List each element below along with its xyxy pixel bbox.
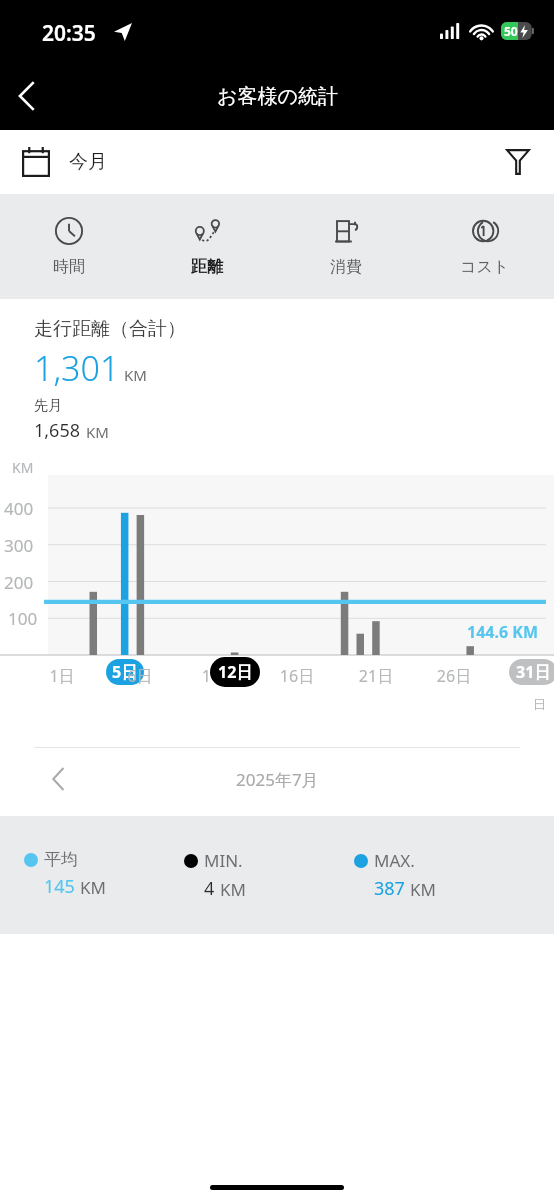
staticText: 31日 [516, 661, 551, 683]
staticText: 12日 [218, 661, 253, 683]
staticText: KM [410, 878, 436, 901]
staticText: 2025年7月 [236, 768, 319, 791]
staticText: 400 [4, 497, 34, 520]
staticText: 時間 [53, 257, 85, 277]
button[interactable]: 距離 [138, 194, 276, 299]
staticText: 消費 [330, 257, 362, 277]
button[interactable]: 5日 [106, 659, 144, 685]
button[interactable]: コスト [415, 194, 554, 299]
staticText: KM [86, 422, 109, 442]
staticText: MIN. [204, 849, 243, 872]
staticText: KM [220, 878, 246, 901]
button[interactable]: 31日 [509, 659, 554, 685]
staticText: KM [12, 458, 34, 477]
staticText: 5日 [112, 661, 138, 683]
button[interactable]: Filter [494, 138, 542, 186]
staticText: 今月 [69, 150, 107, 174]
staticText: 走行距離（合計） [34, 317, 186, 341]
staticText: 1,301 [34, 345, 120, 391]
button[interactable]: Previous month [36, 757, 80, 801]
staticText: 200 [4, 571, 34, 594]
staticText: 平均 [44, 849, 78, 870]
staticText: KM [80, 876, 106, 899]
staticText: 先月 [34, 397, 62, 415]
staticText: 日 [533, 696, 546, 712]
staticText: お客様の統計 [217, 84, 338, 109]
button[interactable]: 今月 [22, 147, 107, 177]
staticText: 4 [204, 876, 215, 901]
staticText: 20:35 [42, 19, 96, 48]
button[interactable]: 消費 [276, 194, 415, 299]
staticText: 16日 [274, 665, 320, 687]
staticText: 1日 [44, 665, 80, 687]
staticText: 100 [8, 607, 38, 630]
button[interactable]: 時間 [0, 194, 138, 299]
button[interactable]: 12日 [210, 657, 260, 687]
staticText: 21日 [353, 665, 399, 687]
staticText: 300 [4, 534, 34, 557]
staticText: 11日 [196, 665, 242, 687]
staticText: MAX. [374, 849, 415, 872]
staticText: 6日 [122, 665, 158, 687]
staticText: 50 [504, 23, 518, 39]
staticText: 距離 [191, 257, 223, 277]
staticText: 145 [44, 874, 75, 899]
staticText: KM [124, 365, 147, 385]
button[interactable]: Back [0, 70, 52, 122]
staticText: 387 [374, 876, 405, 901]
staticText: 1,658 [34, 418, 81, 443]
staticText: 26日 [431, 665, 477, 687]
staticText: コスト [460, 257, 510, 277]
staticText: 144.6 KM [467, 621, 538, 643]
